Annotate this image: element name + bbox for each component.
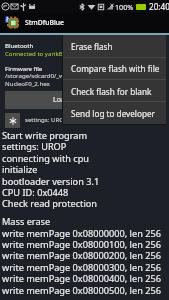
staticText: Check read protection: [2, 197, 98, 210]
staticText: Compare flash with file: [71, 63, 160, 74]
staticText: Check flash for blank: [71, 86, 152, 97]
staticText: /storage/sdcard0/_work/Nucl: [5, 71, 89, 79]
staticText: bootloader version 3.1: [2, 175, 100, 188]
button[interactable]: Load: [5, 91, 118, 109]
button[interactable]: Settings: [5, 113, 20, 128]
staticText: write memPage 0x08000300, len 256: [2, 261, 161, 274]
staticText: write memPage 0x08000400, len 256: [2, 272, 161, 285]
staticText: NucleoF0_2.hex: [5, 79, 50, 87]
staticText: Mass erase: [2, 215, 51, 228]
staticText: initialize: [2, 163, 38, 176]
button[interactable]: Compare flash with file: [63, 57, 166, 79]
staticText: settings: UROP: [25, 115, 68, 123]
staticText: Bluetooth: [5, 41, 34, 49]
button[interactable]: Send log to developer: [63, 102, 166, 124]
button[interactable]: Check flash for blank: [63, 80, 166, 102]
staticText: connecting with cpu: [2, 152, 90, 165]
staticText: Start write program: [2, 129, 88, 142]
staticText: 100%: [115, 2, 134, 12]
staticText: Erase flash: [71, 41, 113, 52]
staticText: write memPage 0x08000100, len 256: [2, 238, 161, 251]
staticText: write memPage 0x08000500, len 256: [2, 284, 161, 297]
button[interactable]: Erase flash: [63, 35, 166, 57]
staticText: Send log to developer: [71, 108, 155, 119]
staticText: write memPage 0x08000000, len 256: [2, 227, 161, 240]
staticText: Firmware file: [5, 64, 43, 72]
staticText: StmDfuBlue: [25, 18, 64, 27]
button[interactable]: [0, 13, 169, 33]
staticText: 20:40: [149, 1, 169, 12]
staticText: Load: [53, 95, 70, 105]
other: App icon: [4, 14, 20, 30]
staticText: settings: UROP: [2, 140, 67, 153]
staticText: CPU ID: 0x0448: [2, 186, 69, 199]
staticText: write memPage 0x08000200, len 256: [2, 249, 161, 262]
staticText: Connected to yarikBoard: [5, 49, 76, 57]
